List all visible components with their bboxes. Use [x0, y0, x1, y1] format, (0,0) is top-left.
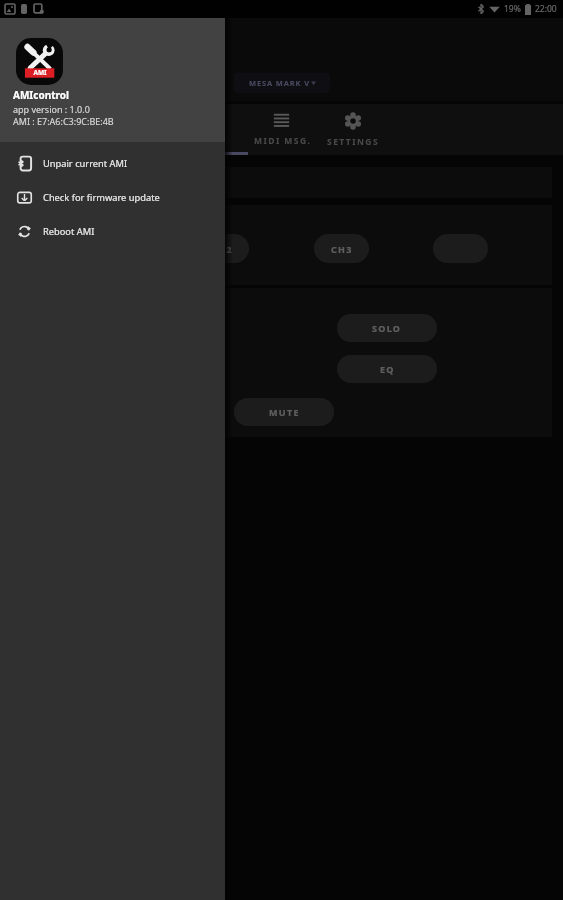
- button[interactable]: Reboot AMI: [0, 214, 225, 248]
- staticText: AMI: [33, 68, 47, 77]
- other: Unpair current AMI: [17, 156, 32, 171]
- staticText: EQ: [380, 363, 395, 375]
- button[interactable]: SOLO: [337, 314, 437, 342]
- button[interactable]: Check for firmware update: [0, 180, 225, 214]
- staticText: Check for firmware update: [43, 191, 160, 204]
- staticText: app version : 1.0.0: [13, 103, 90, 115]
- staticText: 19%: [504, 3, 521, 15]
- button[interactable]: EQ: [337, 355, 437, 383]
- button[interactable]: MUTE: [234, 398, 334, 426]
- staticText: SOLO: [372, 322, 402, 334]
- staticText: Unpair current AMI: [43, 157, 128, 170]
- staticText: CH3: [331, 243, 353, 255]
- button[interactable]: Unpair current AMI: [0, 146, 225, 180]
- staticText: Reboot AMI: [43, 225, 95, 238]
- staticText: MESA MARK V: [249, 78, 310, 88]
- staticText: CH2: [211, 243, 233, 255]
- button[interactable]: [433, 234, 488, 263]
- other: Reboot AMI: [17, 224, 32, 239]
- staticText: AMIcontrol: [13, 88, 69, 102]
- staticText: AMI : E7:A6:C3:9C:BE:4B: [13, 115, 114, 127]
- button[interactable]: CH3: [314, 234, 369, 263]
- button[interactable]: CH1: [75, 234, 130, 263]
- staticText: MIDI MSG.: [254, 135, 312, 147]
- button[interactable]: CH2: [194, 234, 249, 263]
- button[interactable]: SETTINGS: [318, 104, 388, 155]
- other: Check for firmware update: [17, 190, 32, 205]
- button[interactable]: MIDI MSG.: [248, 104, 318, 155]
- staticText: 22:00: [535, 3, 557, 15]
- button[interactable]: MESA MARK V: [234, 73, 330, 93]
- staticText: MUTE: [269, 406, 300, 418]
- staticText: SETTINGS: [327, 136, 380, 148]
